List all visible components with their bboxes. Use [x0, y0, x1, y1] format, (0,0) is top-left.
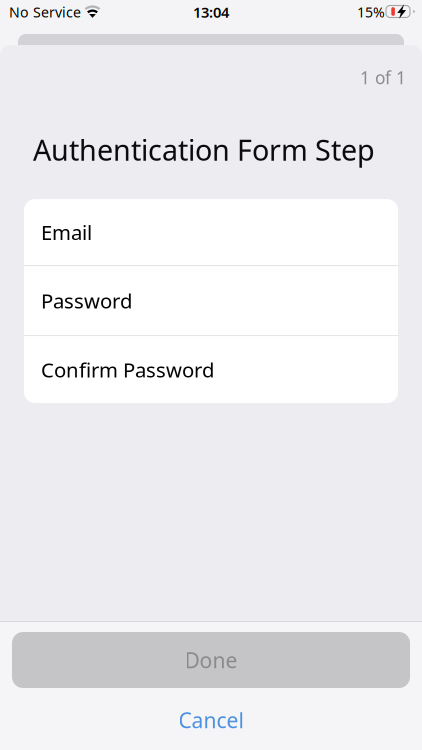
- button[interactable]: Confirm Password: [24, 336, 398, 403]
- staticText: Cancel: [178, 706, 243, 734]
- staticText: Authentication Form Step: [33, 130, 375, 169]
- staticText: 13:04: [193, 2, 229, 22]
- staticText: Password: [41, 287, 132, 314]
- staticText: Confirm Password: [41, 356, 214, 383]
- staticText: 1 of 1: [360, 66, 406, 89]
- button[interactable]: Cancel: [0, 703, 422, 737]
- staticText: Email: [41, 218, 92, 246]
- button[interactable]: Email: [24, 199, 398, 265]
- staticText: 15%: [357, 2, 385, 22]
- button[interactable]: Done: [12, 632, 410, 688]
- staticText: Done: [184, 646, 237, 674]
- staticText: No Service: [9, 2, 81, 22]
- button[interactable]: Password: [24, 266, 398, 335]
